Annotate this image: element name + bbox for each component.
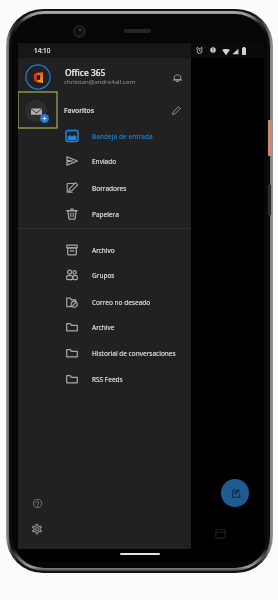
button[interactable]: Add account [18, 92, 57, 128]
button[interactable]: Enviado [18, 148, 191, 174]
button[interactable]: Edit favorites [168, 102, 184, 118]
staticText: Bandeja de entrada [92, 132, 153, 141]
staticText: Papelera [92, 210, 119, 219]
button[interactable]: Correo no deseado [18, 289, 191, 315]
staticText: RSS Feeds [92, 375, 123, 384]
button[interactable]: Borradores [18, 175, 191, 201]
button[interactable]: Favoritos [18, 100, 191, 120]
button[interactable]: Archivo [18, 237, 191, 263]
button[interactable]: Historial de conversaciones [18, 340, 191, 366]
button[interactable]: Compose new mail [221, 479, 249, 507]
button[interactable]: Office 365 account [25, 64, 51, 90]
button[interactable]: Calendar [203, 519, 238, 548]
staticText: Favoritos [64, 106, 94, 115]
staticText: Archivo [92, 246, 115, 255]
button[interactable]: Archive [18, 314, 191, 340]
staticText: 14:10 [34, 46, 51, 55]
button[interactable]: Help [27, 493, 47, 513]
button[interactable]: Settings [27, 519, 47, 539]
button[interactable]: Grupos [18, 262, 191, 288]
staticText: christian@andro4all.com [64, 77, 136, 85]
button[interactable]: RSS Feeds [18, 366, 191, 392]
staticText: Borradores [92, 184, 127, 193]
staticText: Grupos [92, 271, 115, 280]
staticText: Historial de conversaciones [92, 349, 176, 358]
button[interactable]: Bandeja de entrada [18, 123, 191, 149]
button[interactable]: Notifications [169, 69, 185, 85]
staticText: Archive [92, 323, 115, 332]
staticText: Correo no deseado [92, 298, 151, 307]
button[interactable]: Papelera [18, 201, 191, 227]
staticText: Enviado [92, 157, 117, 166]
staticText: Office 365 [65, 67, 106, 78]
